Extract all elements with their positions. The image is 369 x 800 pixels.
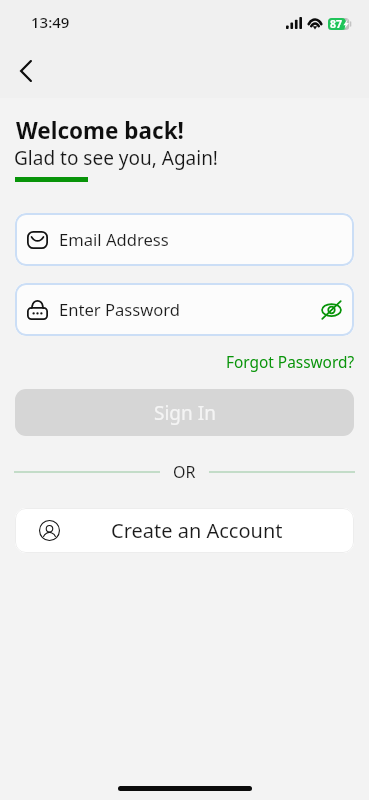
staticText: OR: [173, 461, 196, 483]
staticText: Create an Account: [111, 517, 283, 544]
button[interactable]: Forgot Password?: [226, 352, 355, 373]
button[interactable]: Show password: [321, 299, 342, 320]
staticText: Enter Password: [59, 298, 181, 321]
staticText: Glad to see you, Again!: [14, 145, 218, 171]
button[interactable]: Sign In: [15, 389, 354, 436]
staticText: Forgot Password?: [226, 352, 355, 373]
button[interactable]: Enter Password: [15, 283, 354, 336]
staticText: Sign In: [154, 400, 216, 426]
staticText: 87: [330, 17, 343, 31]
button[interactable]: Create an Account: [15, 508, 354, 553]
button[interactable]: Back: [10, 55, 41, 86]
staticText: Welcome back!: [16, 115, 184, 146]
button[interactable]: Email Address: [15, 213, 354, 266]
staticText: Email Address: [59, 228, 169, 251]
staticText: 13:49: [31, 12, 70, 32]
